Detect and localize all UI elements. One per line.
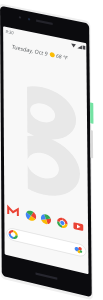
button[interactable]: Google Pixel 3 smartphone, Clearly White [0, 0, 103, 300]
